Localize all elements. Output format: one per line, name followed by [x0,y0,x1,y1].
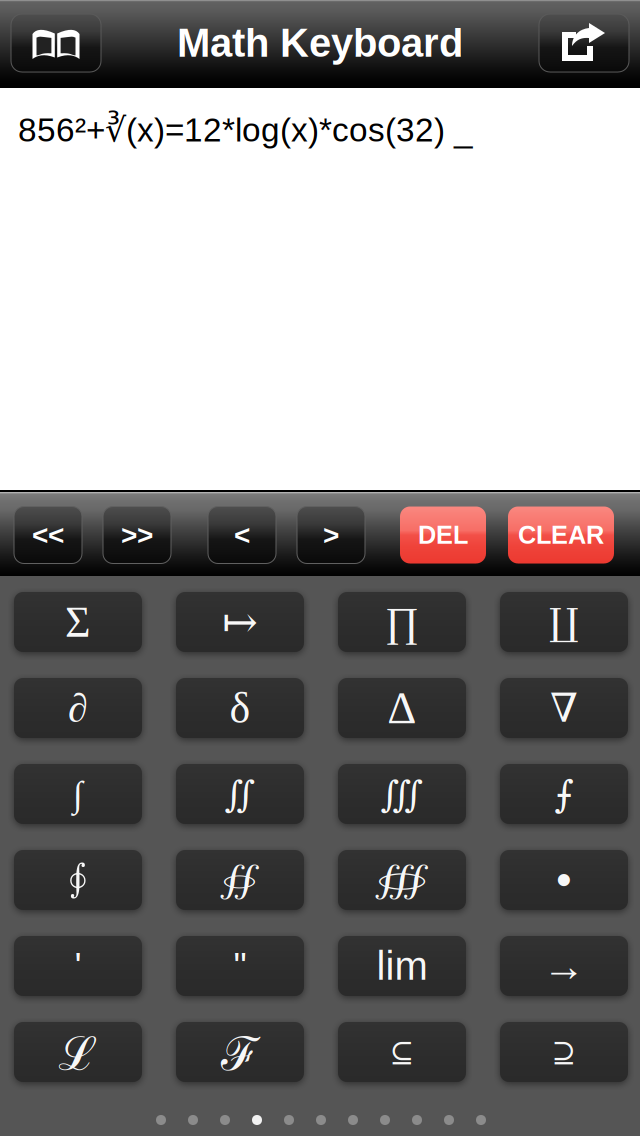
button[interactable]: ⊇ [500,1022,628,1082]
button[interactable]: ∏ [338,592,466,652]
staticText: 856²+∛(x)=12*log(x)*cos(32) _ [18,111,473,149]
button[interactable]: ∇ [500,678,628,738]
button[interactable]: Share [539,14,629,72]
staticText: Σ [65,598,91,646]
button[interactable]: → [500,936,628,996]
staticText: " [233,945,246,987]
staticText: ∏ [385,599,419,645]
staticText: > [323,519,339,551]
staticText: → [542,942,585,990]
staticText: ∐ [549,600,579,644]
staticText: CLEAR [518,521,604,549]
staticText: >> [121,519,153,551]
staticText: < [234,519,250,551]
button[interactable]: CLEAR [508,506,614,563]
staticText: ∂ [68,686,88,730]
button[interactable]: ℱ [176,1022,304,1082]
staticText: ⨍ [554,772,573,816]
button[interactable]: lim [338,936,466,996]
button[interactable]: ∯ [176,850,304,910]
staticText: ∮ [66,856,90,904]
button[interactable]: δ [176,678,304,738]
button[interactable]: ∫ [14,764,142,824]
button[interactable]: >> [103,506,171,563]
staticText: DEL [418,521,468,549]
button[interactable]: Library [11,14,101,72]
button[interactable]: ⊆ [338,1022,466,1082]
staticText: ∆ [388,683,416,733]
staticText: ⊆ [389,1035,414,1069]
button[interactable]: ∬ [176,764,304,824]
staticText: ∯ [220,861,259,899]
button[interactable]: Σ [14,592,142,652]
staticText: ℱ [221,1020,259,1084]
staticText: ∭ [380,773,423,815]
staticText: δ [229,684,250,732]
button[interactable]: ↦ [176,592,304,652]
staticText: ∇ [550,685,578,731]
button[interactable]: ∆ [338,678,466,738]
staticText: ' [74,945,81,987]
button[interactable]: • [500,850,628,910]
button[interactable]: ⨍ [500,764,628,824]
staticText: ⊇ [551,1035,576,1069]
staticText: ∰ [375,861,428,899]
button[interactable]: ∂ [14,678,142,738]
button[interactable]: << [14,506,82,563]
staticText: lim [376,944,427,988]
staticText: • [555,852,573,908]
staticText: << [32,519,64,551]
button[interactable]: ∰ [338,850,466,910]
button[interactable]: DEL [400,506,486,563]
button[interactable]: " [176,936,304,996]
button[interactable]: ∭ [338,764,466,824]
staticText: ↦ [222,597,258,647]
staticText: ℒ [58,1020,97,1084]
staticText: ∬ [224,773,255,815]
button[interactable]: ' [14,936,142,996]
button[interactable]: ∮ [14,850,142,910]
button[interactable]: > [297,506,365,563]
button[interactable]: ∐ [500,592,628,652]
staticText: Math Keyboard [177,21,463,65]
button[interactable]: ℒ [14,1022,142,1082]
staticText: ∫ [73,774,83,814]
button[interactable]: < [208,506,276,563]
